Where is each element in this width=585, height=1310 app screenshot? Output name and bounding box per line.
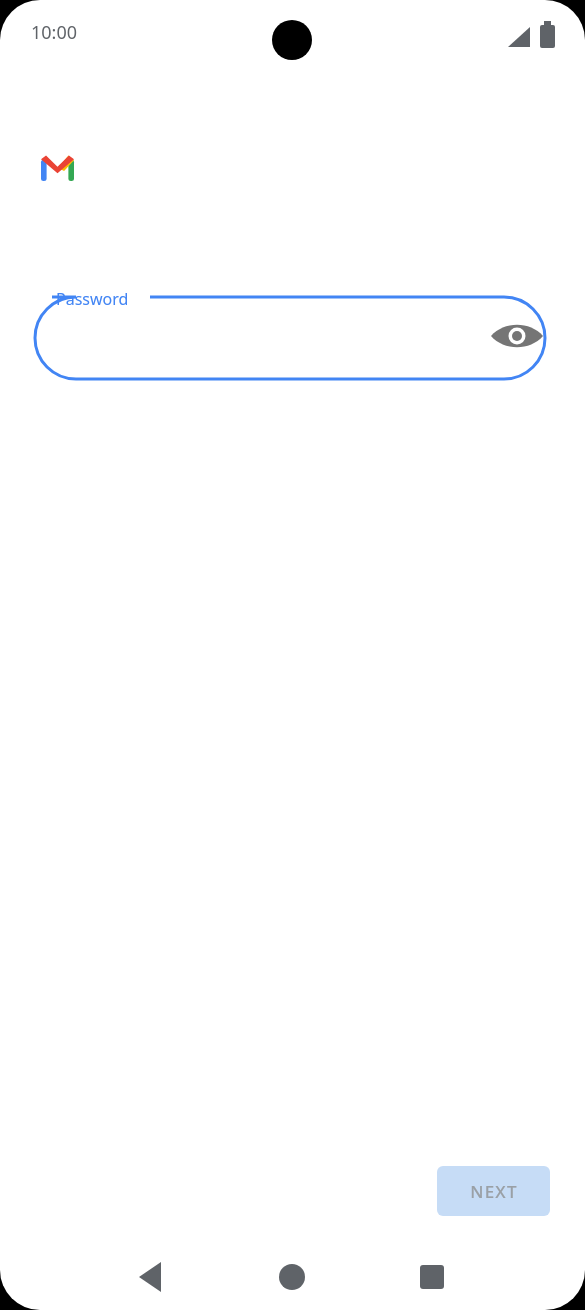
staticText: Password <box>56 288 129 310</box>
button[interactable]: Recent apps <box>402 1247 462 1307</box>
staticText: 10:00 <box>31 20 78 45</box>
button[interactable]: NEXT <box>437 1166 550 1216</box>
staticText: NEXT <box>470 1180 518 1203</box>
button[interactable]: Show password <box>493 312 541 360</box>
button[interactable]: Back <box>122 1247 182 1307</box>
button[interactable]: Home <box>262 1247 322 1307</box>
button[interactable] <box>35 297 545 379</box>
